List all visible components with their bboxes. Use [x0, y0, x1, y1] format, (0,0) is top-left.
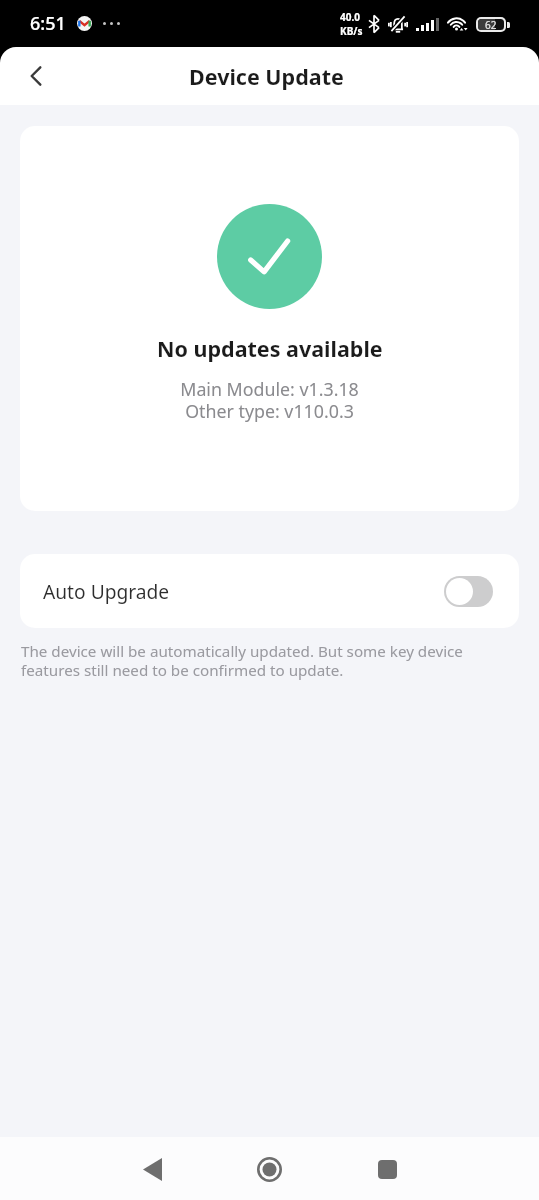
- staticText: 62: [485, 19, 497, 29]
- staticText: KB/s: [340, 24, 363, 38]
- staticText: Device Update: [189, 62, 344, 91]
- staticText: No updates available: [157, 334, 383, 363]
- button[interactable]: Back: [126, 1143, 178, 1195]
- staticText: The device will be automatically updated…: [21, 641, 499, 680]
- button[interactable]: Home: [243, 1143, 295, 1195]
- button[interactable]: Auto Upgrade toggle: [444, 576, 493, 607]
- button[interactable]: Auto Upgrade: [20, 554, 519, 628]
- staticText: Main Module: v1.3.18 Other type: v110.0.…: [180, 377, 359, 423]
- button[interactable]: Recents: [361, 1143, 413, 1195]
- button[interactable]: Back: [13, 53, 59, 99]
- staticText: 40.0: [340, 10, 360, 24]
- staticText: Auto Upgrade: [43, 578, 170, 604]
- staticText: 6:51: [30, 11, 66, 36]
